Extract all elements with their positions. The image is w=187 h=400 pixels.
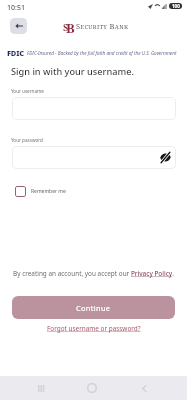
staticText: Your username [11, 88, 44, 94]
staticText: S [63, 21, 69, 33]
button[interactable]: Home [84, 376, 100, 400]
staticText: Continue [76, 303, 111, 313]
staticText: SECURITY BANK [76, 21, 129, 31]
staticText: Sign in with your username. [11, 65, 134, 78]
staticText: 10:51 [7, 3, 25, 13]
staticText: FDIC [7, 48, 24, 58]
staticText: FDIC-Insured - Backed by the full faith … [27, 50, 177, 56]
button[interactable]: Show password [12, 146, 176, 169]
button[interactable] [12, 97, 176, 120]
staticText: Remember me [31, 188, 66, 195]
button[interactable]: Back [136, 376, 152, 400]
button[interactable]: Back [10, 18, 27, 34]
staticText: Your password [11, 137, 43, 143]
button[interactable]: Remember me [15, 186, 66, 197]
button[interactable]: Recent apps [33, 376, 49, 400]
staticText: Forgot username or password? [47, 324, 141, 333]
button[interactable]: Forgot username or password? [47, 324, 141, 333]
button[interactable]: Continue [12, 296, 175, 319]
staticText: 100 [172, 3, 180, 9]
staticText: By creating an account, you accept our P… [0, 269, 187, 278]
button[interactable]: Show password [160, 152, 171, 163]
staticText: B [66, 19, 75, 33]
